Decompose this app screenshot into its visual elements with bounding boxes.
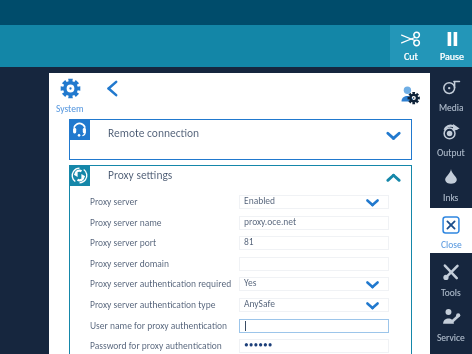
- staticText: Proxy server authentication type: [90, 299, 216, 311]
- staticText: proxy.oce.net: [244, 216, 297, 228]
- staticText: Output: [437, 147, 465, 159]
- button[interactable]: Proxy server domain: [69, 257, 412, 277]
- staticText: User name for proxy authentication: [90, 320, 228, 332]
- staticText: Close: [441, 239, 462, 251]
- staticText: Cut: [404, 50, 418, 62]
- staticText: Proxy server authentication required: [90, 278, 232, 290]
- button[interactable]: Proxy settings: [69, 165, 412, 187]
- button[interactable]: Proxy server: [69, 195, 412, 215]
- staticText: Inks: [443, 192, 459, 204]
- button[interactable]: Media: [430, 72, 472, 117]
- button[interactable]: User settings: [399, 85, 420, 106]
- button[interactable]: Service: [430, 302, 472, 347]
- button[interactable]: Inks: [430, 162, 472, 207]
- staticText: Proxy server name: [90, 217, 162, 229]
- staticText: Media: [439, 102, 464, 114]
- button[interactable]: Back: [101, 77, 124, 100]
- button[interactable]: Close: [415, 208, 472, 253]
- staticText: Proxy server domain: [90, 258, 169, 270]
- button[interactable]: Proxy server port: [69, 236, 412, 256]
- staticText: Service: [437, 332, 465, 344]
- staticText: Remote connection: [108, 126, 200, 140]
- staticText: System: [56, 103, 84, 115]
- staticText: Yes: [244, 277, 257, 289]
- staticText: Enabled: [244, 195, 276, 207]
- staticText: ••••••: [244, 339, 273, 351]
- button[interactable]: Tools: [430, 257, 472, 302]
- button[interactable]: System: [50, 78, 90, 115]
- staticText: Proxy server port: [90, 237, 157, 249]
- staticText: 81: [244, 236, 254, 248]
- staticText: Tools: [441, 287, 461, 299]
- button[interactable]: Proxy server name: [69, 216, 412, 236]
- button[interactable]: Proxy server authentication type: [69, 298, 412, 318]
- button[interactable]: Proxy server authentication required: [69, 277, 412, 297]
- button[interactable]: User name for proxy authentication: [69, 319, 412, 339]
- button[interactable]: Cut: [390, 25, 431, 67]
- button[interactable]: Password for proxy authentication: [69, 339, 412, 354]
- staticText: AnySafe: [244, 298, 275, 310]
- button[interactable]: Pause: [431, 25, 472, 67]
- button[interactable]: Output: [430, 117, 472, 162]
- staticText: Proxy server: [90, 196, 138, 208]
- staticText: Pause: [440, 50, 464, 62]
- staticText: Proxy settings: [108, 168, 173, 182]
- button[interactable]: Remote connection: [69, 119, 412, 160]
- staticText: Password for proxy authentication: [90, 340, 222, 352]
